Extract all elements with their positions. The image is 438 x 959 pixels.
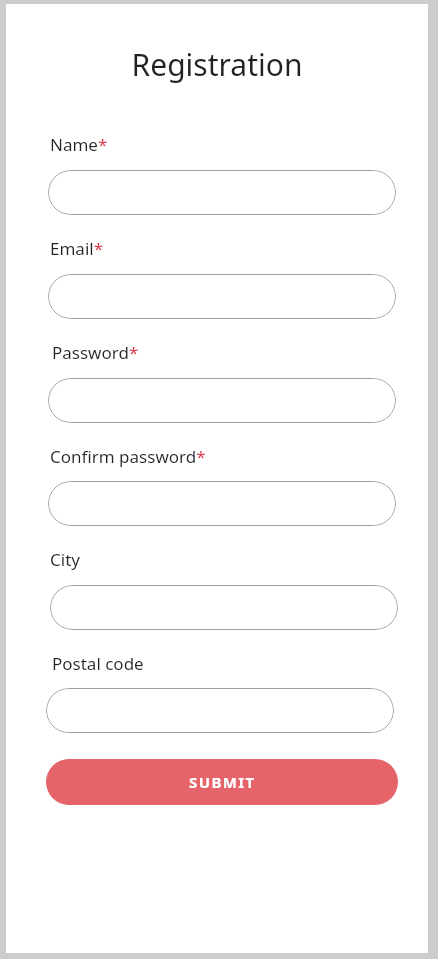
staticText: Name* (50, 133, 108, 156)
button[interactable] (46, 688, 394, 733)
staticText: Email* (50, 237, 104, 260)
staticText: Confirm password* (50, 445, 206, 468)
button[interactable] (50, 585, 398, 630)
staticText: Registration (6, 44, 428, 85)
button[interactable] (48, 274, 396, 319)
button[interactable] (48, 170, 396, 215)
staticText: SUBMIT (189, 772, 256, 792)
button[interactable] (48, 378, 396, 423)
staticText: Password* (52, 341, 139, 364)
button[interactable] (48, 481, 396, 526)
staticText: City (50, 548, 80, 571)
staticText: Postal code (52, 652, 144, 675)
button[interactable]: SUBMIT (46, 759, 398, 805)
